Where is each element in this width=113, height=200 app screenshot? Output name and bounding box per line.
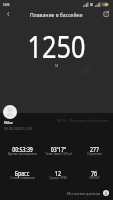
staticText: Источник данных bbox=[67, 191, 101, 196]
staticText: 12 bbox=[55, 169, 61, 177]
staticText: Брасс bbox=[14, 169, 29, 177]
staticText: 00:53:39 bbox=[12, 145, 33, 153]
button[interactable]: Брасс bbox=[4, 169, 40, 181]
button[interactable]: 76 bbox=[76, 169, 112, 181]
button[interactable]: 00:53:39 bbox=[4, 145, 40, 157]
button[interactable]: Back bbox=[0, 9, 16, 19]
staticText: Отрезков bbox=[87, 152, 102, 156]
button[interactable]: 12 bbox=[40, 169, 76, 181]
staticText: 277 bbox=[90, 145, 99, 153]
staticText: Стиль плавания bbox=[10, 176, 35, 180]
button[interactable]: Источник данных bbox=[67, 190, 109, 196]
button[interactable]: Profile bbox=[3, 105, 17, 119]
staticText: SWOLF bbox=[89, 176, 100, 180]
staticText: м bbox=[55, 62, 59, 68]
staticText: Средн. SPM bbox=[49, 176, 67, 180]
staticText: 16:06 bbox=[3, 2, 9, 7]
staticText: Темп (мин/100 м) bbox=[45, 152, 72, 156]
staticText: Nike bbox=[4, 120, 13, 125]
staticText: Плавание в бассейне bbox=[30, 12, 83, 19]
staticText: 06.09.2020 12:50 bbox=[4, 126, 32, 131]
staticText: 76 bbox=[91, 169, 97, 177]
button[interactable]: 277 bbox=[76, 145, 112, 157]
staticText: Время тренировки bbox=[8, 152, 37, 156]
button[interactable]: Share bbox=[99, 9, 113, 19]
staticText: 03'17" bbox=[50, 145, 66, 153]
staticText: 1250 bbox=[28, 25, 85, 67]
staticText: Mi Fit · Плавание в бассейне bbox=[57, 118, 109, 123]
button[interactable]: 03'17" bbox=[40, 145, 76, 157]
